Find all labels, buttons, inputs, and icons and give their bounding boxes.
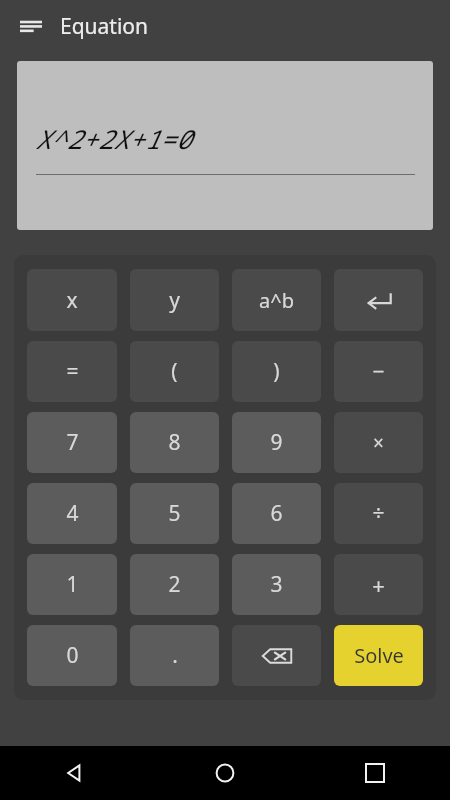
button[interactable]: Plus bbox=[334, 554, 423, 615]
staticText: 8 bbox=[168, 428, 181, 457]
staticText: ÷ bbox=[372, 499, 385, 528]
button[interactable]: 7 bbox=[27, 412, 117, 473]
staticText: 7 bbox=[66, 428, 79, 457]
button[interactable]: 3 bbox=[232, 554, 321, 615]
button[interactable]: Back bbox=[0, 746, 150, 800]
staticText: 9 bbox=[270, 428, 283, 457]
button[interactable]: 9 bbox=[232, 412, 321, 473]
button[interactable]: 0 bbox=[27, 625, 117, 686]
staticText: Equation bbox=[60, 12, 149, 41]
staticText: Solve bbox=[354, 642, 404, 669]
button[interactable]: Multiply bbox=[334, 412, 423, 473]
button[interactable]: Backspace bbox=[232, 625, 321, 686]
staticText: a^b bbox=[259, 287, 294, 314]
staticText: 4 bbox=[66, 499, 79, 528]
button[interactable]: − bbox=[334, 341, 423, 402]
button[interactable]: Divide bbox=[334, 483, 423, 544]
staticText: ( bbox=[171, 357, 178, 386]
button[interactable]: 8 bbox=[130, 412, 219, 473]
staticText: y bbox=[169, 286, 180, 315]
staticText: 6 bbox=[270, 499, 283, 528]
button[interactable]: ) bbox=[232, 341, 321, 402]
button[interactable]: . bbox=[130, 625, 219, 686]
staticText: 3 bbox=[270, 570, 283, 599]
staticText: x bbox=[66, 286, 78, 315]
staticText: − bbox=[372, 357, 385, 386]
button[interactable]: 5 bbox=[130, 483, 219, 544]
staticText: 2 bbox=[168, 570, 181, 599]
staticText: 0 bbox=[66, 641, 79, 670]
staticText: 1 bbox=[66, 570, 79, 599]
button[interactable]: Solve bbox=[334, 625, 423, 686]
staticText: + bbox=[372, 570, 385, 600]
button[interactable]: 4 bbox=[27, 483, 117, 544]
button[interactable]: 1 bbox=[27, 554, 117, 615]
button[interactable]: Enter bbox=[334, 269, 423, 331]
staticText: = bbox=[66, 357, 79, 386]
staticText: 5 bbox=[168, 499, 181, 528]
button[interactable]: Menu bbox=[14, 9, 48, 43]
staticText: X^2+2X+1=0 bbox=[35, 121, 192, 156]
button[interactable]: ( bbox=[130, 341, 219, 402]
button[interactable]: Recent apps bbox=[300, 746, 450, 800]
button[interactable]: 6 bbox=[232, 483, 321, 544]
button[interactable]: y bbox=[130, 269, 219, 331]
button[interactable]: = bbox=[27, 341, 117, 402]
staticText: × bbox=[373, 430, 384, 456]
button[interactable]: x bbox=[27, 269, 117, 331]
staticText: ) bbox=[273, 357, 280, 386]
button[interactable]: 2 bbox=[130, 554, 219, 615]
button[interactable]: a^b bbox=[232, 269, 321, 331]
button[interactable]: Home bbox=[150, 746, 300, 800]
staticText: . bbox=[172, 641, 178, 670]
